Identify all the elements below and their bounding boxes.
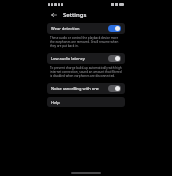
button[interactable]: Toggle — [108, 85, 121, 92]
button[interactable]: Wear detection — [47, 23, 125, 34]
staticText: Help — [51, 100, 60, 105]
staticText: Settings — [63, 11, 87, 19]
staticText: These audio or control the playback devi… — [50, 36, 122, 48]
staticText: Wear detection — [51, 26, 105, 31]
staticText: Low audio latency — [51, 56, 105, 61]
button[interactable]: Noise cancelling with one earbud — [47, 83, 125, 94]
button[interactable]: Help — [47, 97, 125, 107]
button[interactable]: Low audio latency — [47, 53, 125, 64]
button[interactable]: Toggle — [108, 55, 121, 62]
staticText: To prevent charge build-up automatically… — [50, 66, 122, 78]
button[interactable]: Toggle — [108, 25, 121, 32]
staticText: Noise cancelling with one earbud — [51, 86, 105, 91]
button[interactable]: Back — [48, 9, 59, 20]
